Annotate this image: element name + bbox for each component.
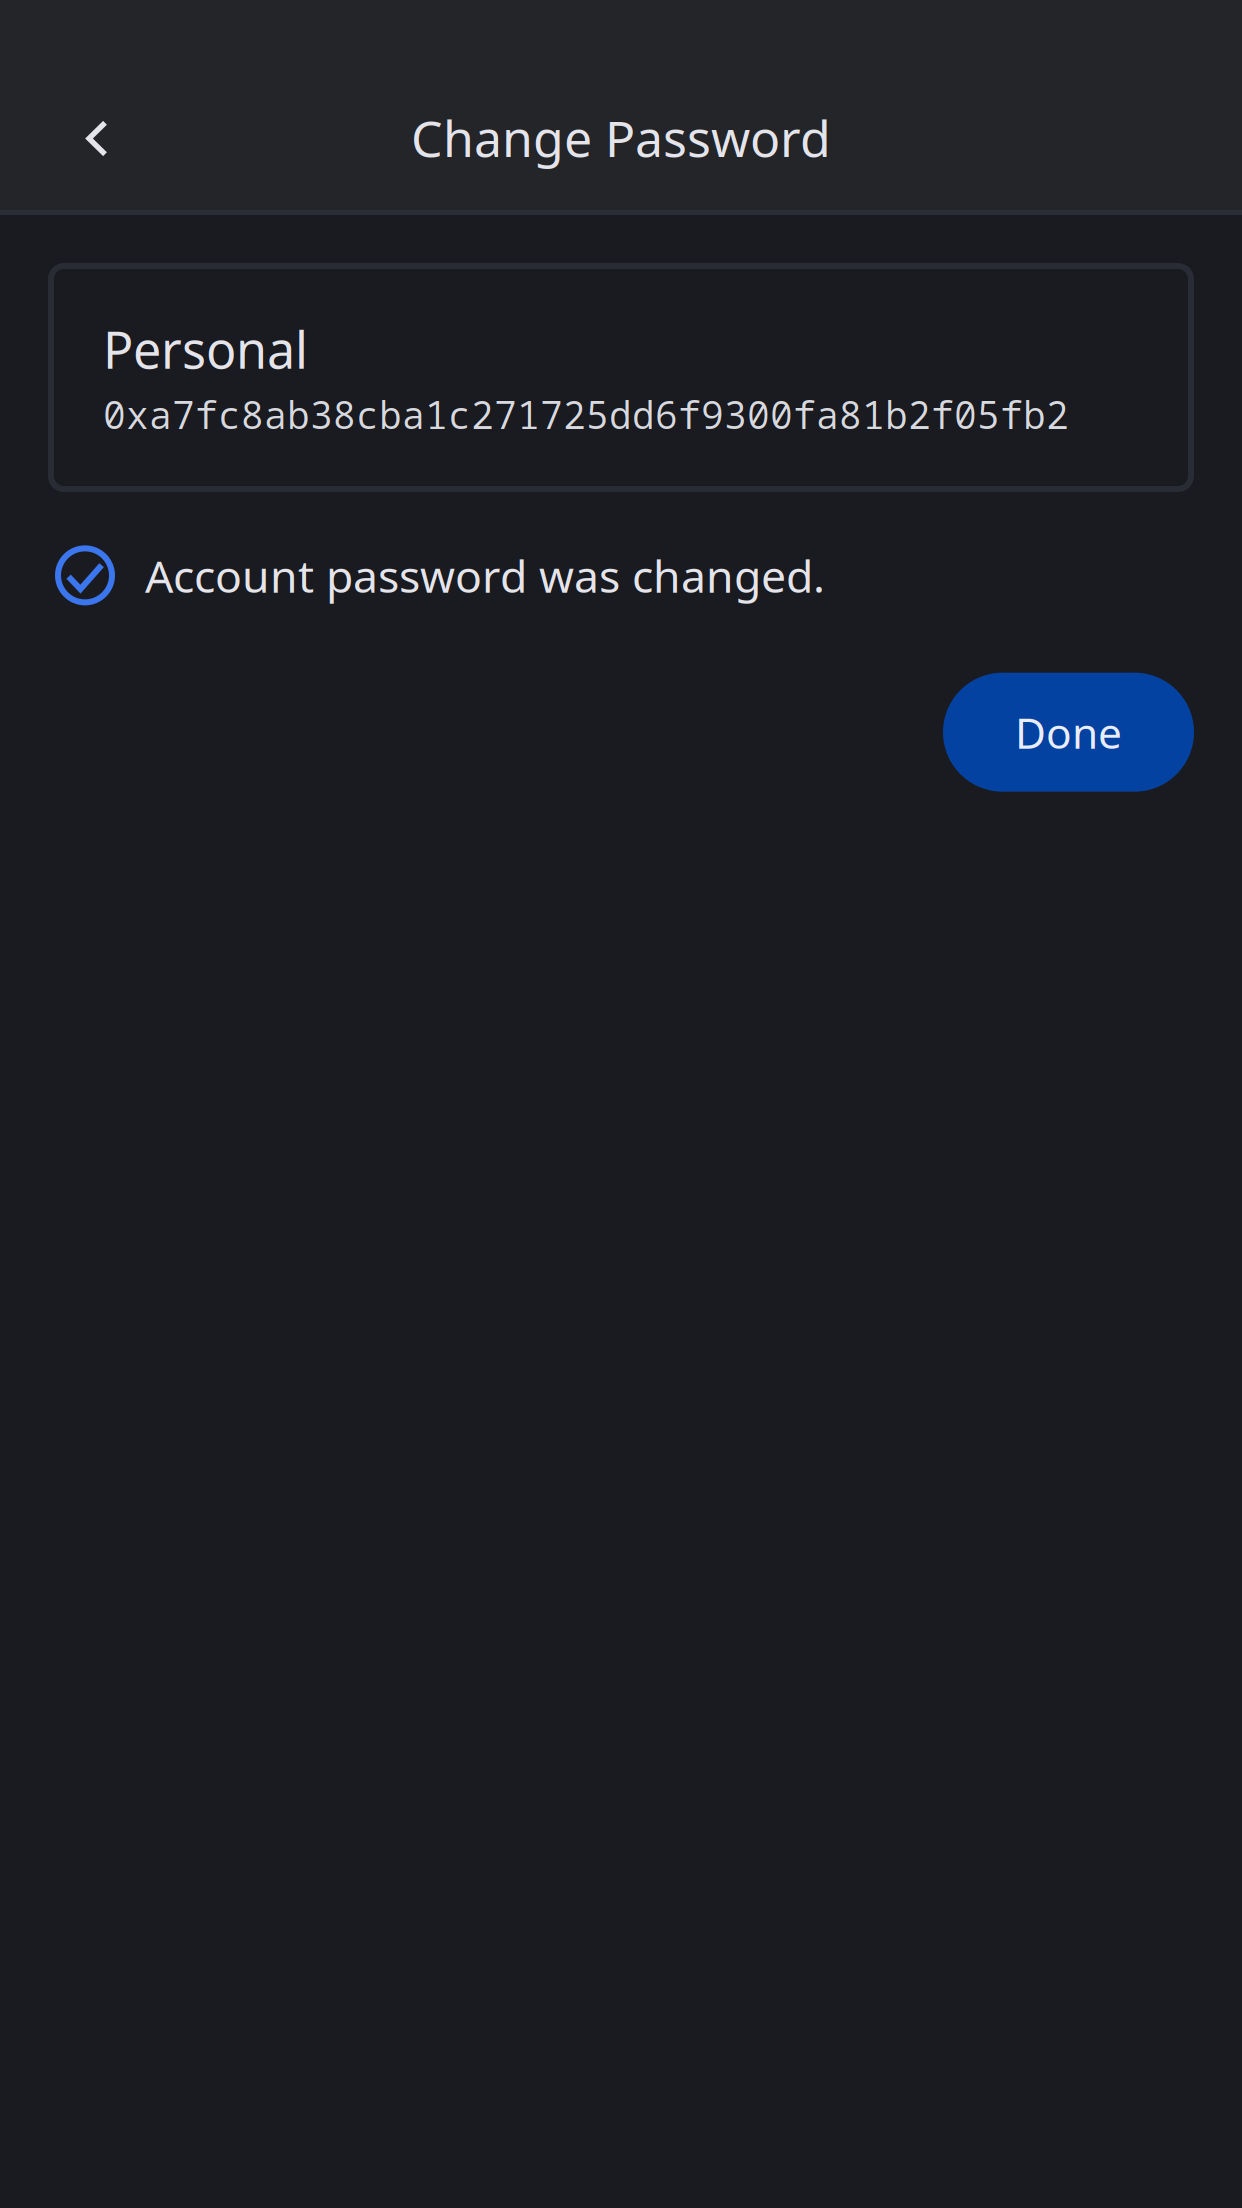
staticText: Personal xyxy=(103,315,308,383)
button[interactable]: Back xyxy=(51,92,143,184)
staticText: Account password was changed. xyxy=(145,545,825,606)
staticText: Change Password xyxy=(411,103,831,172)
staticText: Done xyxy=(1015,703,1122,761)
staticText: 0xa7fc8ab38cba1c271725dd6f9300fa81b2f05f… xyxy=(103,388,1069,440)
button[interactable]: Done xyxy=(943,673,1194,792)
